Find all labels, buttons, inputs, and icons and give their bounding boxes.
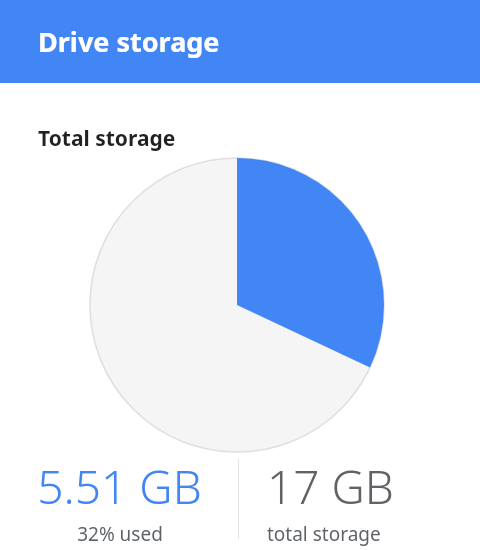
button[interactable]: Drive storage xyxy=(0,0,480,83)
other: Storage usage pie chart, 32% used xyxy=(89,157,385,453)
staticText: 5.51 GB xyxy=(37,455,202,518)
staticText: 17 GB xyxy=(267,455,394,518)
staticText: Drive storage xyxy=(38,23,220,60)
staticText: total storage xyxy=(267,521,381,547)
staticText: 32% used xyxy=(77,521,163,547)
button[interactable]: 17 GB xyxy=(239,453,480,550)
staticText: Total storage xyxy=(38,124,176,153)
button[interactable]: 5.51 GB xyxy=(0,453,238,550)
